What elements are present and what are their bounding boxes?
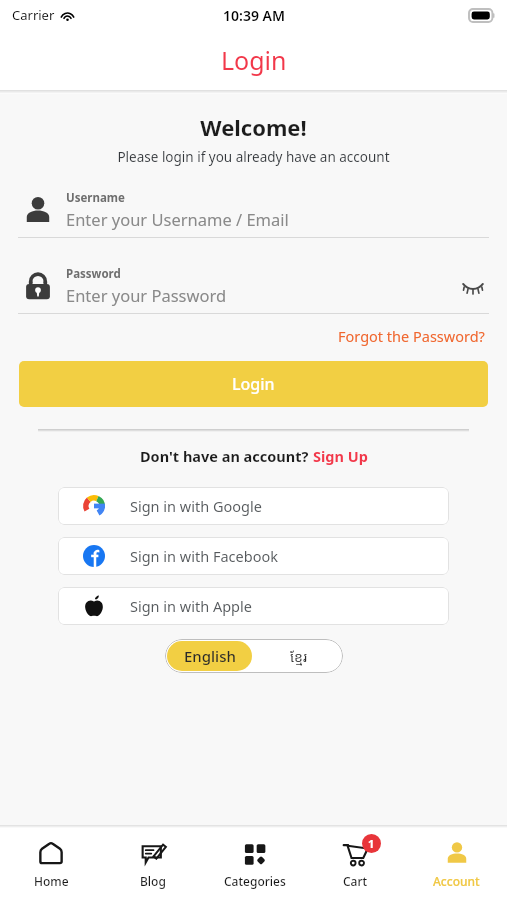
staticText: Sign in with Google — [130, 496, 262, 516]
staticText: Sign in with Apple — [130, 596, 252, 616]
staticText: Enter your Username / Email — [66, 208, 289, 230]
button[interactable]: Sign in with Apple — [58, 587, 449, 625]
staticText: Sign Up — [313, 446, 368, 466]
staticText: Categories — [224, 873, 286, 889]
button[interactable]: Forgot the Password? — [334, 322, 489, 350]
button[interactable]: ខ្មែរ — [254, 639, 343, 673]
button[interactable]: English — [167, 641, 252, 671]
staticText: Welcome! — [0, 112, 507, 142]
staticText: Forgot the Password? — [338, 326, 485, 346]
button[interactable]: Sign Up — [313, 446, 368, 466]
staticText: Carrier — [12, 6, 55, 24]
button[interactable]: Login — [19, 361, 488, 407]
button[interactable]: Password — [0, 266, 507, 314]
staticText: Cart — [343, 873, 368, 889]
staticText: Home — [34, 873, 69, 889]
button[interactable]: Home — [0, 828, 102, 900]
staticText: 1 — [368, 836, 375, 851]
button[interactable]: Categories — [204, 828, 305, 900]
staticText: Account — [433, 873, 480, 889]
button[interactable]: Blog — [102, 828, 204, 900]
staticText: Blog — [140, 873, 166, 889]
button[interactable]: 1 — [305, 828, 406, 900]
staticText: Sign in with Facebook — [130, 546, 278, 566]
staticText: Login — [221, 43, 287, 77]
button[interactable]: Sign in with Google — [58, 487, 449, 525]
staticText: English — [184, 646, 236, 666]
staticText: Enter your Password — [66, 284, 227, 306]
staticText: Login — [232, 373, 275, 395]
staticText: 10:39 AM — [223, 6, 285, 25]
button[interactable]: Sign in with Facebook — [58, 537, 449, 575]
staticText: Username — [66, 190, 125, 206]
staticText: ខ្មែរ — [290, 647, 307, 666]
staticText: Don't have an account? — [140, 446, 313, 466]
staticText: Password — [66, 266, 121, 282]
button[interactable]: Show password — [453, 266, 493, 306]
staticText: Please login if you already have an acco… — [0, 148, 507, 166]
button[interactable]: Username — [0, 190, 507, 238]
button[interactable]: Account — [406, 828, 507, 900]
